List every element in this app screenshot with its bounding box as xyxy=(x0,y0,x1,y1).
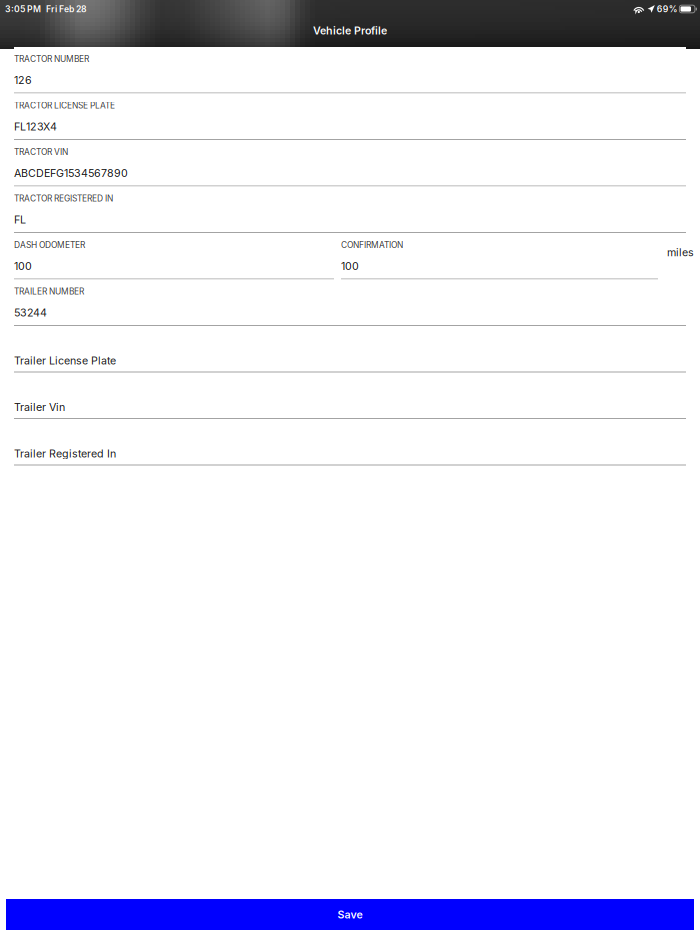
staticText: Save xyxy=(337,908,362,921)
staticText: TRACTOR VIN xyxy=(14,147,68,157)
button[interactable]: TRACTOR LICENSE PLATE xyxy=(14,93,686,140)
staticText: 126 xyxy=(14,73,32,86)
staticText: Vehicle Profile xyxy=(313,24,387,37)
staticText: 100 xyxy=(341,259,359,272)
staticText: ABCDEFG1534567890 xyxy=(14,166,128,179)
staticText: 53244 xyxy=(14,306,47,319)
staticText: TRACTOR REGISTERED IN xyxy=(14,193,113,204)
button[interactable]: TRACTOR REGISTERED IN xyxy=(14,186,686,233)
staticText: TRACTOR NUMBER xyxy=(14,54,89,64)
button[interactable]: TRACTOR NUMBER xyxy=(14,47,686,93)
staticText: DASH ODOMETER xyxy=(14,240,85,250)
staticText: Trailer Vin xyxy=(14,400,65,413)
staticText: Trailer Registered In xyxy=(14,447,116,460)
staticText: 69% xyxy=(657,4,678,14)
button[interactable]: Trailer Registered In xyxy=(14,419,686,465)
staticText: FL123X4 xyxy=(14,120,57,133)
staticText: miles xyxy=(667,246,694,259)
button[interactable]: Trailer License Plate xyxy=(14,326,686,372)
staticText: TRAILER NUMBER xyxy=(14,286,84,297)
staticText: FL xyxy=(14,213,26,226)
button[interactable]: Save xyxy=(6,899,694,930)
button[interactable]: TRAILER NUMBER xyxy=(14,279,686,326)
staticText: Trailer License Plate xyxy=(14,354,116,367)
staticText: 100 xyxy=(14,259,32,272)
staticText: CONFIRMATION xyxy=(341,240,403,250)
staticText: TRACTOR LICENSE PLATE xyxy=(14,100,115,111)
button[interactable]: TRACTOR VIN xyxy=(14,140,686,186)
button[interactable]: DASH ODOMETER xyxy=(14,233,334,279)
button[interactable]: CONFIRMATION xyxy=(341,233,658,279)
staticText: 3:05 PM xyxy=(5,4,41,14)
button[interactable]: Trailer Vin xyxy=(14,372,686,419)
staticText: Fri Feb 28 xyxy=(46,4,87,14)
